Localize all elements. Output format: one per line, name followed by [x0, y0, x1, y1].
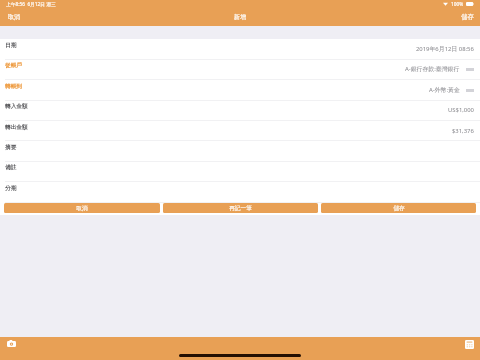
button[interactable]: 備註 [0, 161, 480, 181]
button[interactable]: 儲存 [321, 203, 476, 213]
staticText: 分期 [5, 185, 17, 192]
staticText: 儲存 [393, 205, 405, 212]
button[interactable]: 轉入金額 [0, 100, 480, 120]
staticText: 備註 [5, 164, 17, 171]
staticText: US$1,000 [448, 106, 474, 114]
button[interactable]: Camera [3, 337, 19, 350]
staticText: 取消 [76, 205, 88, 212]
button[interactable]: 再記一筆 [163, 203, 318, 213]
staticText: 摘要 [5, 144, 17, 151]
staticText: 再記一筆 [229, 205, 252, 212]
button[interactable]: 分期 [0, 182, 480, 202]
button[interactable]: 儲存 [461, 13, 474, 21]
button[interactable]: 轉帳到 [0, 80, 480, 100]
button[interactable]: 轉出金額 [0, 121, 480, 141]
button[interactable]: 取消 [8, 13, 21, 21]
staticText: 轉入金額 [5, 103, 28, 110]
staticText: 轉出金額 [5, 124, 28, 131]
button[interactable]: 摘要 [0, 141, 480, 161]
staticText: $31,376 [452, 127, 474, 135]
button[interactable]: 從帳戶 [0, 59, 480, 79]
button[interactable]: Calculator [461, 337, 477, 351]
staticText: A-外幣:黃金 [429, 86, 460, 94]
staticText: 新增 [234, 13, 247, 21]
staticText: 上午8:56 6月12日 週三 [6, 1, 56, 7]
staticText: 日期 [5, 42, 17, 49]
button[interactable]: 日期 [0, 39, 480, 59]
staticText: 儲存 [461, 13, 474, 21]
staticText: 2019年6月12日 08:56 [416, 45, 474, 53]
staticText: A-銀行存款:臺灣銀行 [405, 65, 460, 73]
staticText: 取消 [8, 13, 21, 21]
staticText: 從帳戶 [5, 62, 22, 69]
button[interactable]: 取消 [4, 203, 160, 213]
staticText: 100% [451, 1, 464, 7]
staticText: 轉帳到 [5, 83, 22, 90]
